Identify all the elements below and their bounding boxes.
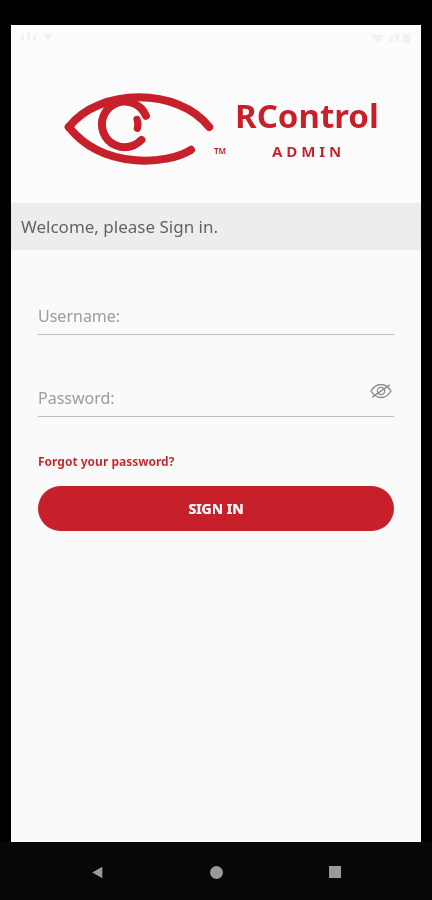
- button[interactable]: Home: [194, 850, 238, 894]
- button[interactable]: SIGN IN: [38, 486, 394, 531]
- staticText: SIGN IN: [188, 499, 244, 518]
- staticText: A D M I N: [272, 141, 342, 161]
- button[interactable]: Show password: [368, 378, 394, 404]
- button[interactable]: Back: [75, 850, 119, 894]
- button[interactable]: Username:: [38, 305, 394, 335]
- staticText: TM: [214, 145, 227, 156]
- button[interactable]: Forgot your password?: [38, 453, 175, 469]
- button[interactable]: Recent apps: [313, 850, 357, 894]
- button[interactable]: Password:: [38, 387, 394, 417]
- staticText: Welcome, please Sign in.: [21, 215, 219, 238]
- staticText: Username:: [38, 305, 121, 327]
- staticText: Password:: [38, 387, 115, 409]
- staticText: Forgot your password?: [38, 453, 175, 469]
- staticText: RControl: [235, 93, 379, 138]
